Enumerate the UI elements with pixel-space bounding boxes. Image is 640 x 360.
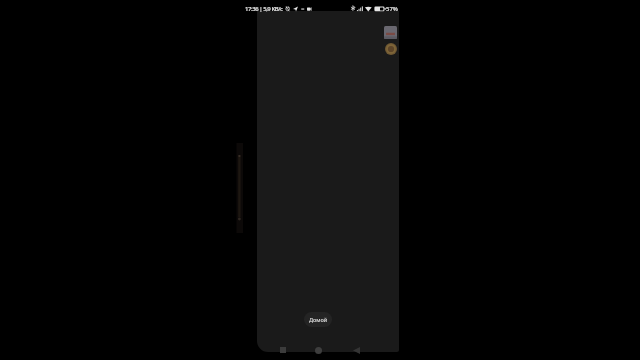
button[interactable]: Home [315,347,322,354]
staticText: 17:36 | 5,9 KB/c [245,5,283,13]
button[interactable]: Assistant [385,43,397,55]
button[interactable]: Screenshot preview [384,26,397,39]
button[interactable]: Back [353,347,360,354]
staticText: 57% [386,5,398,13]
button[interactable]: Домой [304,312,332,327]
staticText: Домой [309,316,328,323]
